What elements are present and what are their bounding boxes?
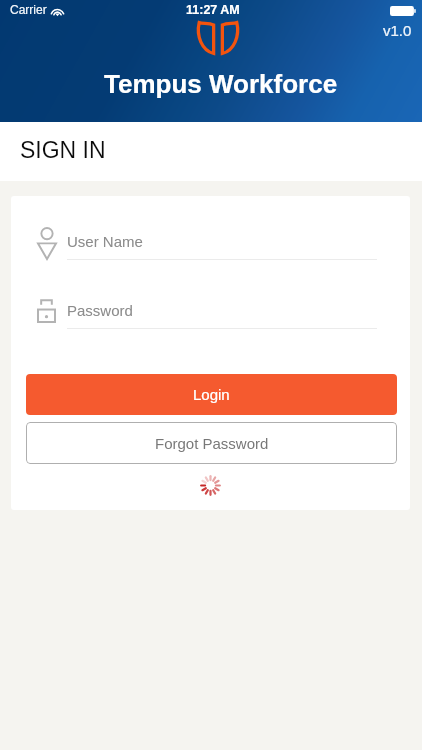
staticText: Password [67,302,133,319]
staticText: v1.0 [383,22,412,39]
staticText: User Name [67,233,143,250]
staticText: Tempus Workforce [104,69,338,98]
other: Battery [390,6,416,16]
staticText: SIGN IN [20,137,106,163]
other: Wi-Fi [51,6,64,16]
staticText: 11:27 AM [186,3,240,17]
button[interactable]: Forgot Password [26,422,397,464]
staticText: Forgot Password [155,435,269,452]
staticText: Carrier [10,3,47,16]
button[interactable]: Login [26,374,397,415]
staticText: Login [193,386,230,403]
